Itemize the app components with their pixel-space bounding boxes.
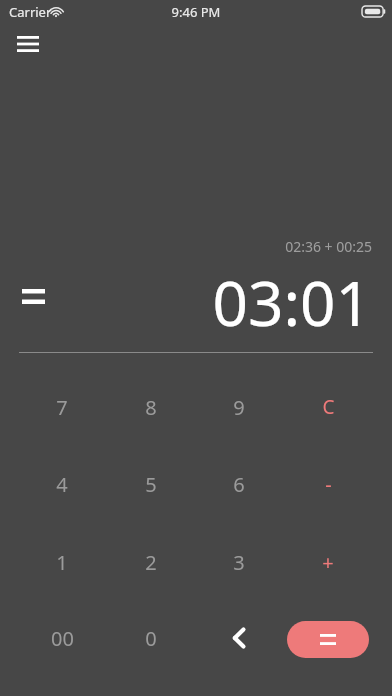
staticText: 02:36 + 00:25 xyxy=(0,237,372,256)
staticText: 5 xyxy=(145,471,157,498)
button[interactable]: 8 xyxy=(107,378,195,436)
button[interactable]: 7 xyxy=(18,378,106,436)
button[interactable]: - xyxy=(284,455,372,513)
button[interactable]: 00 xyxy=(18,609,106,667)
button[interactable]: 6 xyxy=(195,455,283,513)
button[interactable]: Menu xyxy=(6,26,50,62)
staticText: 0 xyxy=(145,625,157,652)
button[interactable]: 2 xyxy=(107,533,195,591)
staticText: 7 xyxy=(56,394,68,421)
staticText: 8 xyxy=(145,394,157,421)
staticText: + xyxy=(322,549,334,576)
button[interactable]: Result xyxy=(14,276,52,316)
button[interactable]: 1 xyxy=(18,533,106,591)
staticText: Carrier xyxy=(9,3,52,21)
staticText: 03:01 xyxy=(0,260,371,344)
button[interactable]: 5 xyxy=(107,455,195,513)
staticText: 1 xyxy=(56,549,68,576)
button[interactable]: Equals xyxy=(287,621,369,658)
staticText: 9:46 PM xyxy=(0,3,392,21)
staticText: 6 xyxy=(233,471,245,498)
button[interactable]: + xyxy=(284,533,372,591)
staticText: 9 xyxy=(233,394,245,421)
button[interactable]: 9 xyxy=(195,378,283,436)
staticText: 00 xyxy=(51,625,74,652)
staticText: 3 xyxy=(233,549,245,576)
button[interactable]: C xyxy=(284,378,372,436)
staticText: - xyxy=(325,471,332,498)
button[interactable]: Backspace xyxy=(209,610,269,666)
staticText: 4 xyxy=(56,471,68,498)
button[interactable]: 3 xyxy=(195,533,283,591)
staticText: C xyxy=(322,394,335,420)
button[interactable]: 4 xyxy=(18,455,106,513)
staticText: 2 xyxy=(145,549,157,576)
button[interactable]: 0 xyxy=(107,609,195,667)
